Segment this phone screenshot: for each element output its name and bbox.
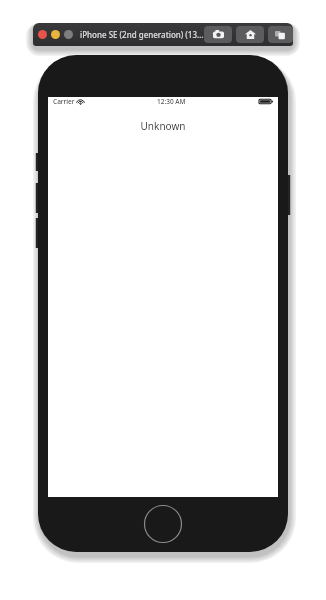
staticText: 12:30 AM (157, 97, 186, 106)
button[interactable]: Close (38, 30, 47, 39)
button[interactable]: Home (236, 26, 264, 43)
button[interactable]: Home button (143, 504, 183, 544)
staticText: iPhone SE (2nd generation) (13… (80, 29, 204, 40)
staticText: Carrier (53, 97, 75, 106)
button[interactable]: Rotate device (268, 26, 293, 43)
button[interactable]: Zoom (64, 30, 73, 39)
button[interactable]: Take screenshot (204, 26, 232, 43)
button[interactable]: Minimize (51, 30, 60, 39)
staticText: Unknown (48, 119, 278, 133)
